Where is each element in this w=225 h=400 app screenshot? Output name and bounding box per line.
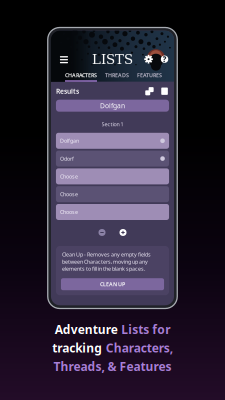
button[interactable]: THREADS [105,72,129,82]
button[interactable]: Choose [56,168,169,184]
button[interactable]: Odorf [56,151,169,167]
staticText: Choose [60,208,78,215]
staticText: Section 1 [101,121,123,128]
button[interactable]: Notes [160,87,169,96]
button[interactable]: FEATURES [137,72,162,82]
staticText: Choose [60,173,78,180]
staticText: CHARACTERS [65,72,97,79]
staticText: Clean Up - Removes any empty fields betw… [62,251,151,272]
button[interactable]: Remove row [97,228,106,237]
button[interactable]: Choose [56,204,169,220]
staticText: Dolfgan [60,137,79,144]
staticText: Adventure [55,321,118,337]
button[interactable]: Add row [118,228,127,237]
staticText: Odorf [60,155,74,162]
button[interactable]: Help [160,55,169,64]
button[interactable]: Roll dice [145,87,154,96]
staticText: Choose [60,191,78,198]
staticText: Lists for [121,321,170,337]
button[interactable]: Menu [56,53,72,67]
button[interactable]: CLEAN UP [61,278,164,290]
staticText: Threads, & Features [53,358,171,374]
staticText: Dolfgan [100,101,125,110]
button[interactable]: Choose [56,186,169,202]
staticText: tracking [52,340,102,356]
staticText: ? [163,54,167,64]
button[interactable]: Settings [144,55,153,64]
button[interactable]: CHARACTERS [65,72,97,82]
staticText: Characters, [106,340,173,356]
staticText: LISTS [92,52,133,67]
button[interactable]: Dolfgan [56,133,169,149]
staticText: THREADS [105,72,129,79]
staticText: Results [56,87,79,96]
staticText: CLEAN UP [100,281,125,288]
staticText: FEATURES [137,72,162,79]
